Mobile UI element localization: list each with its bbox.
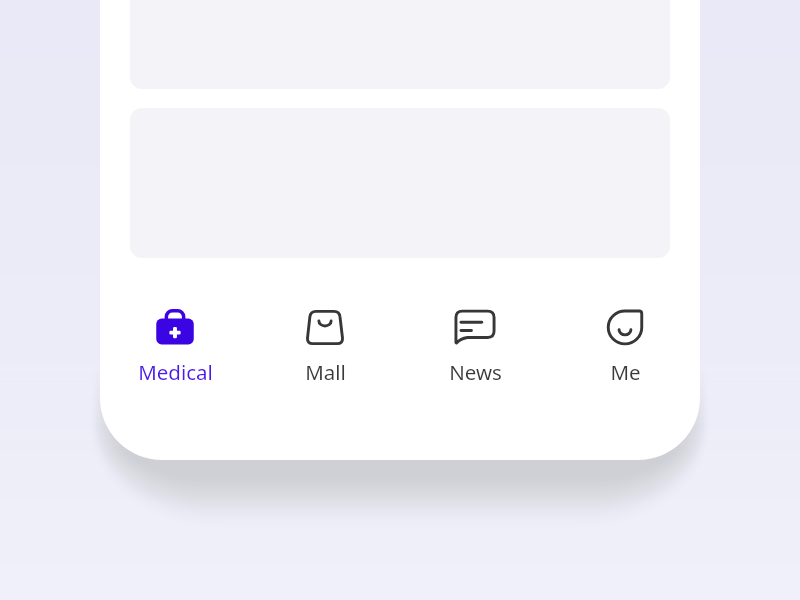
staticText: Me <box>610 358 641 386</box>
button[interactable]: Mall <box>250 293 400 393</box>
button[interactable]: Me <box>550 293 700 393</box>
button[interactable]: News <box>400 293 550 393</box>
staticText: Medical <box>138 358 213 386</box>
button[interactable]: Medical <box>100 293 250 393</box>
staticText: News <box>449 358 502 386</box>
staticText: Mall <box>305 358 346 386</box>
